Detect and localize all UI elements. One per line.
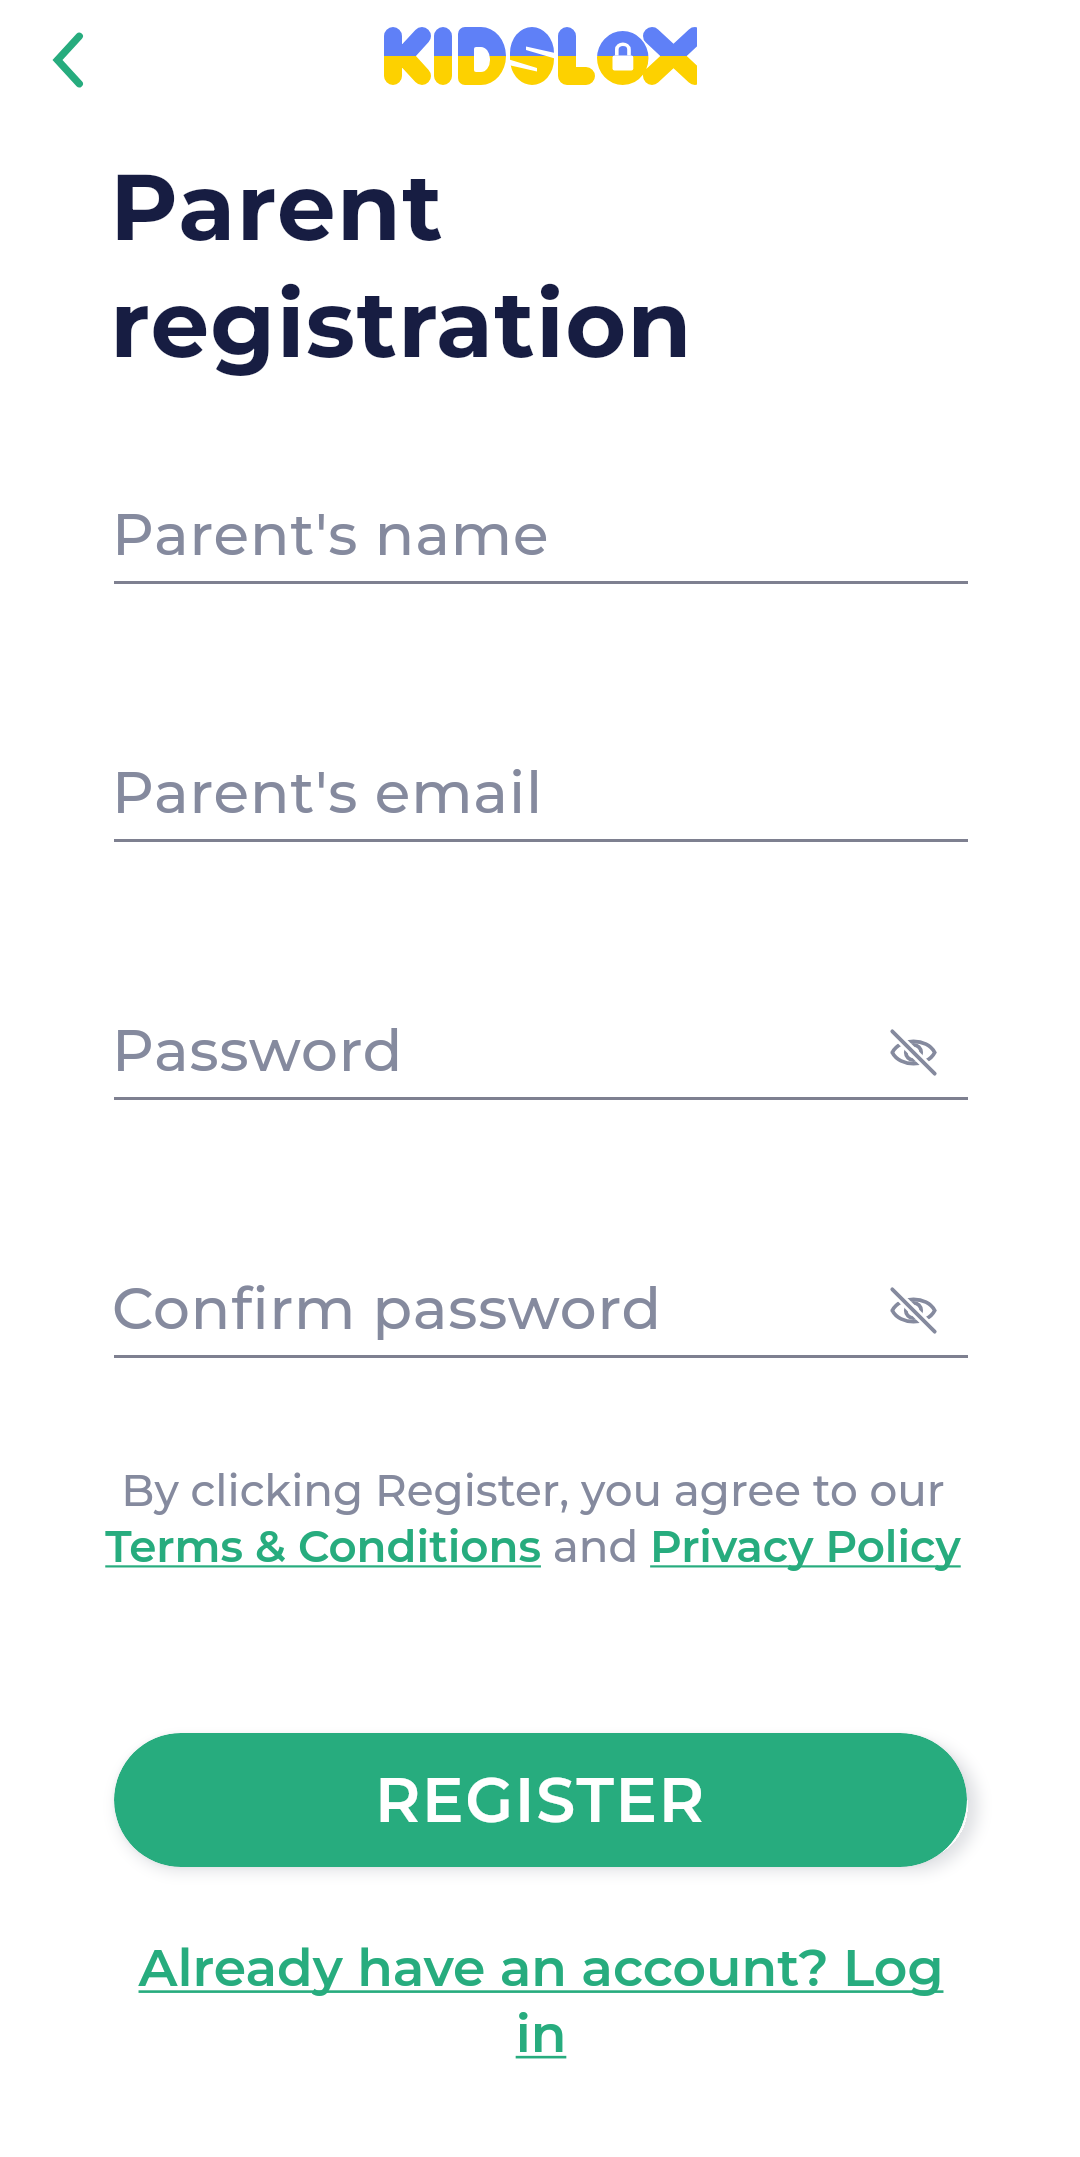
button[interactable]: Back [37,28,101,92]
staticText: By clicking Register, you agree to our T… [100,1464,966,1573]
button[interactable]: Already have an account? Log in [114,1936,968,2065]
button[interactable]: REGISTER [114,1733,967,1867]
staticText: REGISTER [375,1762,706,1838]
staticText: Already have an account? Log in [114,1936,968,2065]
staticText: Parent's email [112,757,544,828]
staticText: Parent's name [112,499,550,570]
staticText: Confirm password [112,1273,663,1344]
button[interactable]: Show password [887,1026,940,1079]
staticText: Password [112,1015,404,1086]
button[interactable]: Show password [887,1284,940,1337]
staticText: Parent registration [110,150,693,380]
